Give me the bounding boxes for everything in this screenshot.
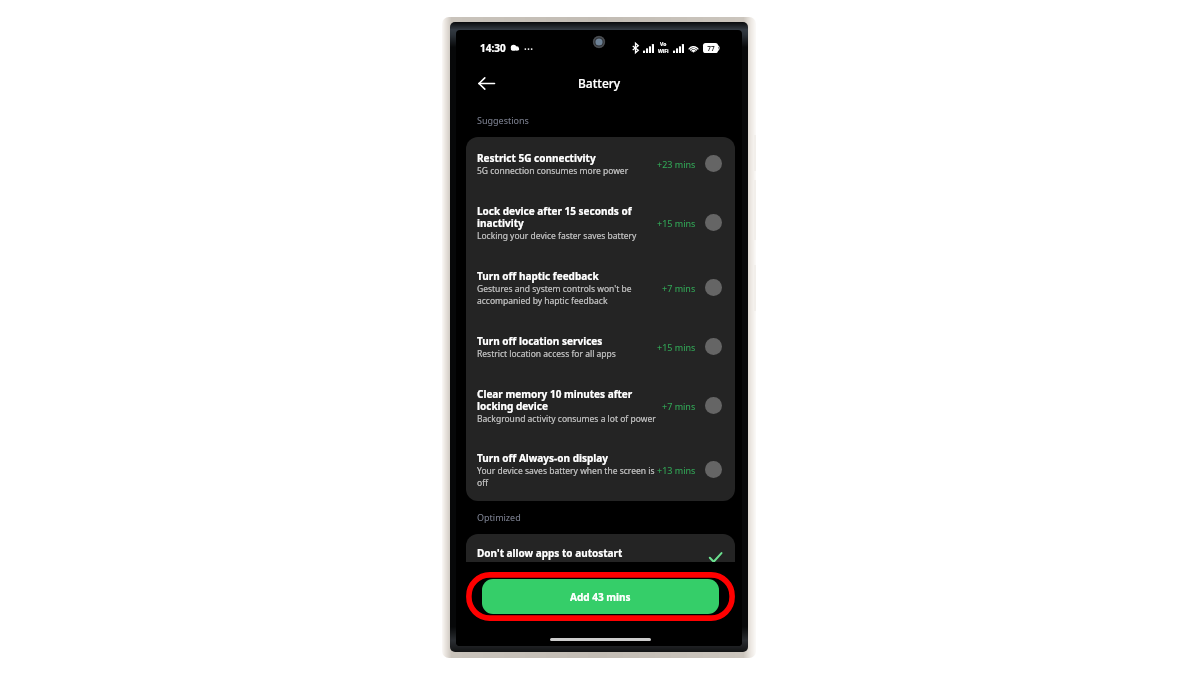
staticText: WiFi	[658, 48, 669, 55]
staticText: 14:30	[480, 41, 506, 55]
button[interactable]: Restrict 5G connectivity	[466, 137, 735, 190]
staticText: Optimized	[477, 511, 521, 523]
button[interactable]: Don't allow apps to autostart	[466, 534, 735, 589]
staticText: +13 mins	[657, 464, 696, 476]
staticText: Restrict location access for all apps	[477, 348, 616, 360]
staticText: Lock device after 15 seconds of inactivi…	[477, 204, 655, 230]
staticText: Battery	[578, 75, 621, 91]
staticText: Background activity consumes a lot of po…	[477, 413, 656, 425]
staticText: Vo	[660, 41, 667, 48]
staticText: Turn off haptic feedback	[477, 269, 599, 283]
staticText: +7 mins	[662, 400, 696, 412]
staticText: Turn off location services	[477, 334, 603, 348]
staticText: Locking your device faster saves battery	[477, 230, 637, 242]
button[interactable]: Lock device after 15 seconds of inactivi…	[466, 190, 735, 255]
staticText: Suggestions	[477, 114, 529, 126]
button[interactable]: Back	[473, 70, 499, 96]
staticText: +15 mins	[657, 217, 696, 229]
button[interactable]: Turn off location services	[466, 320, 735, 373]
button[interactable]: Turn off Always-on display	[466, 437, 735, 501]
staticText: 5G connection consumes more power	[477, 165, 629, 177]
staticText: Restrict 5G connectivity	[477, 151, 596, 165]
staticText: +15 mins	[657, 341, 696, 353]
staticText: Clear memory 10 minutes after locking de…	[477, 387, 660, 413]
staticText: +23 mins	[657, 158, 696, 170]
staticText: Turn off Always-on display	[477, 451, 608, 465]
staticText: Add 43 mins	[570, 590, 631, 604]
staticText: +7 mins	[662, 282, 696, 294]
button[interactable]: Clear memory 10 minutes after locking de…	[466, 373, 735, 438]
staticText: Gestures and system controls won't be ac…	[477, 283, 660, 307]
staticText: 77	[707, 44, 715, 53]
staticText: Don't allow apps to autostart	[477, 546, 709, 560]
staticText: Your device saves battery when the scree…	[477, 465, 655, 489]
button[interactable]: Add 43 mins	[482, 579, 719, 614]
button[interactable]: Turn off haptic feedback	[466, 255, 735, 320]
